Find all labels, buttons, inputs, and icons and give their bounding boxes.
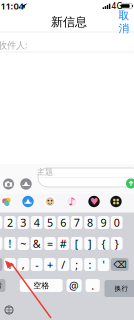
- button[interactable]: /: [57, 258, 69, 271]
- button[interactable]: 换行: [104, 280, 134, 297]
- staticText: +: [47, 257, 53, 272]
- button[interactable]: 取消: [114, 14, 134, 30]
- button[interactable]: Digital Touch: [88, 195, 100, 207]
- staticText: .: [8, 257, 11, 272]
- button[interactable]: 1: [0, 216, 2, 229]
- button[interactable]: $: [0, 237, 2, 250]
- staticText: @: [69, 278, 79, 293]
- staticText: 9: [100, 215, 106, 230]
- staticText: ]: [88, 236, 92, 251]
- staticText: [: [75, 236, 79, 251]
- staticText: #: [60, 236, 67, 251]
- button[interactable]: 空格: [20, 279, 63, 292]
- button[interactable]: &: [31, 237, 42, 250]
- button[interactable]: ~: [17, 237, 29, 250]
- button[interactable]: ]: [84, 237, 96, 250]
- button[interactable]: ⌫: [111, 258, 128, 271]
- staticText: 取消: [118, 9, 129, 35]
- button[interactable]: 9: [98, 216, 109, 229]
- button[interactable]: }: [111, 237, 122, 250]
- button[interactable]: 3: [17, 216, 29, 229]
- button[interactable]: 6: [57, 216, 69, 229]
- staticText: !: [8, 236, 11, 251]
- button[interactable]: #+=: [0, 258, 2, 271]
- button[interactable]: .: [85, 279, 100, 292]
- button[interactable]: 4: [31, 216, 42, 229]
- staticText: }: [115, 236, 119, 251]
- staticText: 3: [20, 215, 26, 230]
- button[interactable]: Switch keyboard: [2, 303, 16, 317]
- button[interactable]: ;: [71, 258, 82, 271]
- staticText: 4: [34, 215, 40, 230]
- button[interactable]: :: [84, 258, 96, 271]
- button[interactable]: Memoji: [44, 195, 56, 207]
- button[interactable]: 2: [4, 216, 16, 229]
- button[interactable]: 7: [71, 216, 82, 229]
- button[interactable]: More apps: [110, 195, 122, 207]
- button[interactable]: =: [44, 237, 56, 250]
- button[interactable]: iMessage apps: [20, 178, 32, 190]
- staticText: 5: [47, 215, 53, 230]
- staticText: 0: [114, 215, 120, 230]
- button[interactable]: 8: [84, 216, 96, 229]
- staticText: 换行: [114, 284, 128, 293]
- staticText: 11:04: [0, 0, 23, 12]
- staticText: 8: [87, 215, 93, 230]
- staticText: &: [33, 236, 41, 251]
- button[interactable]: -: [31, 258, 42, 271]
- staticText: ': [102, 257, 104, 272]
- staticText: ⌫: [113, 259, 126, 270]
- staticText: ♥: [90, 196, 98, 207]
- button[interactable]: [: [71, 237, 82, 250]
- button[interactable]: 5: [44, 216, 56, 229]
- button[interactable]: 0: [111, 216, 122, 229]
- button[interactable]: !: [4, 237, 16, 250]
- staticText: =: [47, 236, 53, 251]
- staticText: ~: [20, 236, 26, 251]
- button[interactable]: Take photo: [2, 178, 14, 190]
- staticText: {: [101, 236, 105, 251]
- button[interactable]: Music: [66, 195, 78, 207]
- staticText: 新信息: [51, 15, 87, 29]
- button[interactable]: {: [98, 237, 109, 250]
- button[interactable]: Photos: [0, 195, 12, 207]
- staticText: ♪: [68, 195, 75, 207]
- button[interactable]: Send: [126, 178, 134, 188]
- button[interactable]: .: [4, 258, 16, 271]
- staticText: 7: [74, 215, 80, 230]
- staticText: 拼音: [0, 281, 3, 290]
- staticText: 2: [7, 215, 13, 230]
- staticText: 6: [60, 215, 66, 230]
- button[interactable]: App Store: [22, 195, 34, 207]
- staticText: ;: [75, 257, 78, 272]
- staticText: .: [91, 278, 94, 293]
- button[interactable]: 拼音: [0, 279, 5, 292]
- staticText: 收件人:: [0, 39, 28, 51]
- staticText: -: [35, 257, 38, 272]
- button[interactable]: ': [98, 258, 109, 271]
- staticText: 主题: [37, 167, 53, 177]
- staticText: /: [61, 257, 65, 272]
- button[interactable]: @: [67, 279, 82, 292]
- staticText: :: [88, 257, 91, 272]
- button[interactable]: ,: [17, 258, 29, 271]
- staticText: 空格: [33, 281, 49, 290]
- staticText: ,: [22, 257, 25, 272]
- button[interactable]: #: [57, 237, 69, 250]
- staticText: 4G: [111, 1, 122, 11]
- button[interactable]: +: [44, 258, 56, 271]
